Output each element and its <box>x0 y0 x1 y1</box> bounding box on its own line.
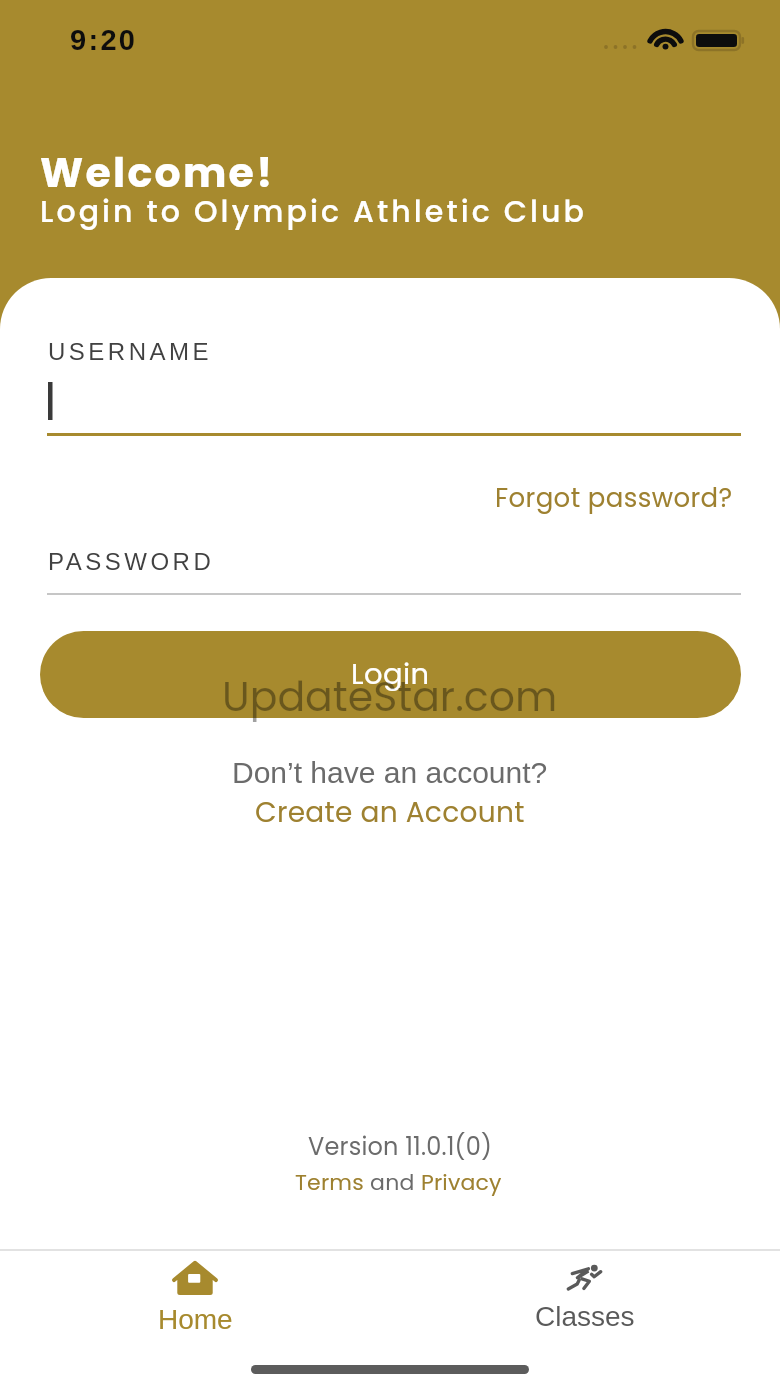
button[interactable]: Login <box>40 631 741 718</box>
staticText: Create an Account <box>255 793 525 832</box>
staticText: Version 11.0.1(0) <box>308 1130 493 1164</box>
staticText: Login <box>351 654 430 695</box>
button[interactable]: Privacy <box>421 1167 502 1198</box>
staticText: Forgot password? <box>495 480 733 516</box>
staticText: Classes <box>535 1301 635 1332</box>
button[interactable]: Forgot password? <box>495 480 733 516</box>
staticText: Privacy <box>421 1167 502 1198</box>
button[interactable]: Home <box>0 1251 390 1387</box>
staticText: USERNAME <box>48 338 213 365</box>
staticText: 9:20 <box>70 24 138 56</box>
staticText: PASSWORD <box>48 548 215 575</box>
staticText: Don’t have an account? <box>232 756 548 790</box>
staticText: UpdateStar.com <box>222 668 558 725</box>
staticText: Terms <box>295 1167 364 1198</box>
button[interactable] <box>47 578 741 614</box>
staticText: and <box>364 1167 421 1198</box>
staticText: Home <box>158 1304 233 1335</box>
button[interactable] <box>47 376 733 434</box>
staticText: Welcome! <box>40 144 275 201</box>
button[interactable]: Classes <box>390 1251 780 1387</box>
other: Home <box>172 1262 218 1295</box>
staticText: Login to Olympic Athletic Club <box>40 191 587 233</box>
other: Classes <box>566 1264 604 1293</box>
button[interactable]: Create an Account <box>255 793 525 832</box>
button[interactable]: Terms <box>295 1167 364 1198</box>
